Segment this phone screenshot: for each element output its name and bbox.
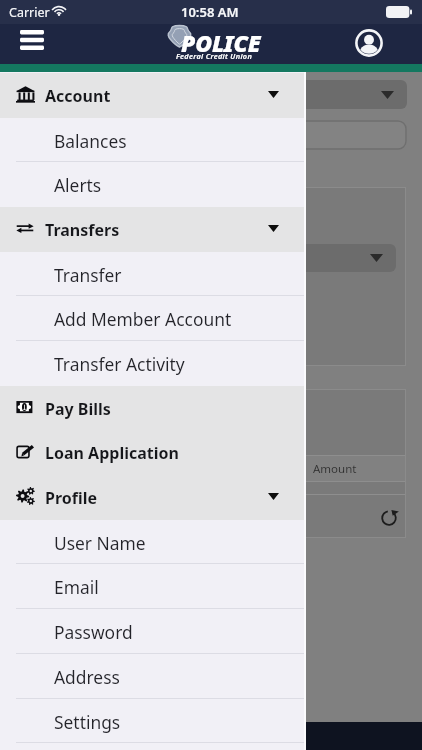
staticText: Profile bbox=[45, 487, 98, 509]
button[interactable]: Profile bbox=[347, 23, 391, 63]
staticText: POLICE bbox=[181, 27, 261, 58]
staticText: Email bbox=[54, 575, 99, 599]
button[interactable]: Address bbox=[0, 654, 306, 699]
button[interactable]: Loan Application bbox=[0, 430, 306, 475]
button[interactable]: Account bbox=[0, 73, 306, 118]
button[interactable]: Transfer Activity bbox=[0, 341, 306, 386]
button[interactable]: Balances bbox=[0, 118, 306, 163]
button[interactable]: Alerts bbox=[0, 162, 306, 207]
staticText: Settings bbox=[54, 710, 121, 734]
button[interactable]: User Name bbox=[0, 520, 306, 565]
staticText: Pay Bills bbox=[45, 398, 111, 420]
staticText: Loan Application bbox=[45, 442, 179, 464]
staticText: Alerts bbox=[54, 173, 102, 197]
staticText: Add Member Account bbox=[54, 307, 232, 331]
button[interactable]: Profile bbox=[0, 475, 306, 520]
staticText: Federal Credit Union bbox=[176, 51, 253, 61]
button[interactable]: Password bbox=[0, 609, 306, 654]
staticText: Carrier bbox=[9, 4, 50, 21]
button[interactable]: Pay Bills bbox=[0, 386, 306, 431]
staticText: Balances bbox=[54, 129, 127, 153]
staticText: Amount bbox=[313, 461, 357, 477]
staticText: Address bbox=[54, 665, 120, 689]
staticText: 10:58 AM bbox=[181, 3, 239, 21]
button[interactable]: Open navigation menu bbox=[10, 20, 54, 60]
staticText: Password bbox=[54, 620, 133, 644]
button[interactable]: Transfer bbox=[0, 252, 306, 297]
staticText: Transfers bbox=[45, 219, 120, 241]
button[interactable]: Settings bbox=[0, 699, 306, 744]
button[interactable]: Transfers bbox=[0, 207, 306, 252]
staticText: Account bbox=[45, 85, 111, 107]
button[interactable]: Email bbox=[0, 564, 306, 609]
button[interactable]: Add Member Account bbox=[0, 296, 306, 341]
staticText: Transfer Activity bbox=[54, 352, 185, 376]
staticText: Transfer bbox=[54, 263, 122, 287]
staticText: User Name bbox=[54, 531, 146, 555]
